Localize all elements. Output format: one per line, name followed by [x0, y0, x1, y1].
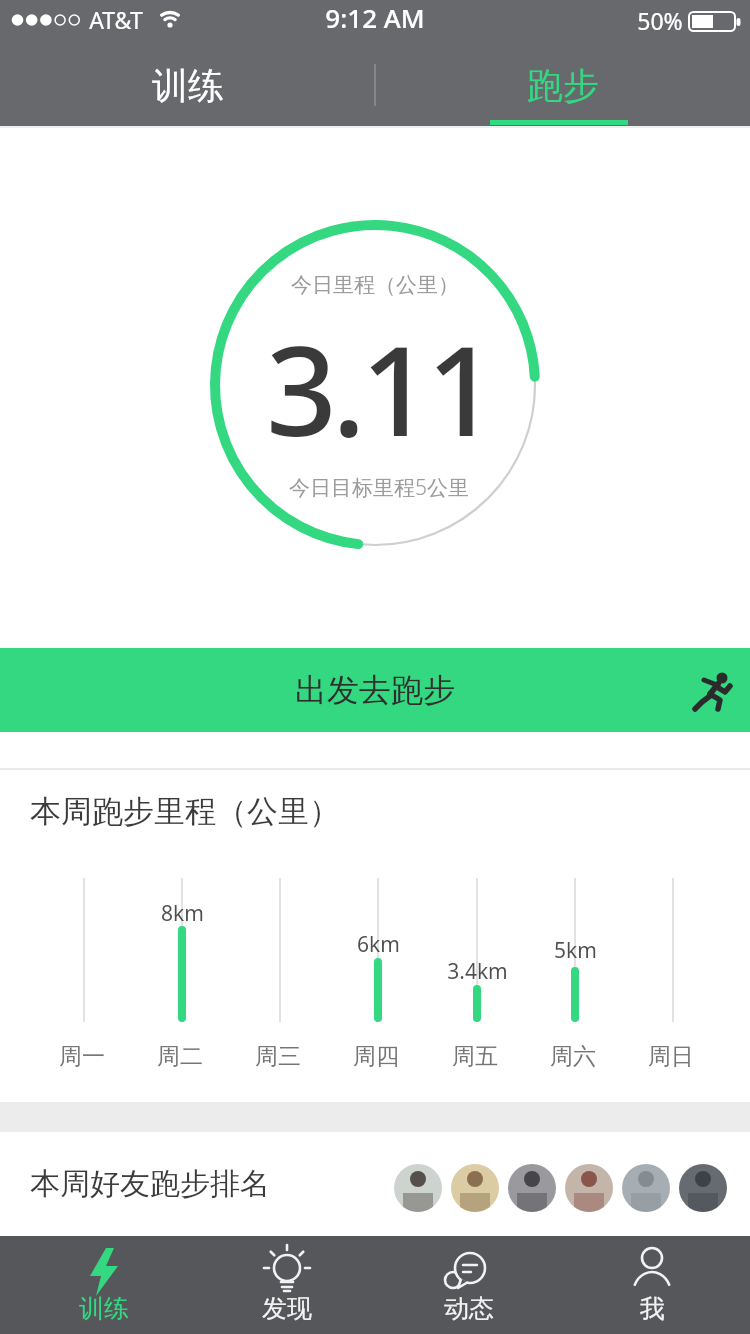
staticText: 3.11 [266, 303, 493, 472]
staticText: 出发去跑步 [295, 670, 455, 710]
staticText: 训练 [79, 1293, 129, 1324]
staticText: 周四 [353, 1042, 399, 1071]
button[interactable]: 我 [564, 1236, 740, 1334]
button[interactable]: 训练 [16, 1236, 192, 1334]
staticText: 周一 [59, 1042, 105, 1071]
staticText: 今日里程（公里） [291, 272, 459, 298]
staticText: AT&T [89, 4, 143, 35]
staticText: 本周好友跑步排名 [30, 1165, 270, 1203]
staticText: 训练 [152, 63, 224, 108]
button[interactable]: 训练 [0, 44, 375, 126]
staticText: 发现 [262, 1293, 312, 1324]
staticText: 周二 [157, 1042, 203, 1071]
staticText: 本周跑步里程（公里） [30, 792, 340, 831]
staticText: 周六 [550, 1042, 596, 1071]
staticText: 动态 [444, 1293, 494, 1324]
staticText: 50% [637, 5, 683, 36]
button[interactable]: 出发去跑步 [0, 648, 750, 732]
staticText: 9:12 AM [325, 0, 425, 35]
staticText: 我 [640, 1293, 665, 1324]
button[interactable]: 发现 [199, 1236, 375, 1334]
button[interactable]: 本周好友跑步排名 [0, 1132, 750, 1236]
staticText: 6km [357, 930, 400, 959]
staticText: 5km [554, 936, 597, 965]
staticText: 周日 [648, 1042, 694, 1071]
button[interactable]: 跑步 [375, 44, 750, 126]
staticText: 周五 [452, 1042, 498, 1071]
staticText: 周三 [255, 1042, 301, 1071]
staticText: 今日目标里程5公里 [289, 473, 469, 502]
staticText: 3.4km [447, 957, 508, 986]
button[interactable]: 动态 [381, 1236, 557, 1334]
staticText: 跑步 [527, 63, 599, 108]
staticText: 8km [161, 899, 204, 928]
